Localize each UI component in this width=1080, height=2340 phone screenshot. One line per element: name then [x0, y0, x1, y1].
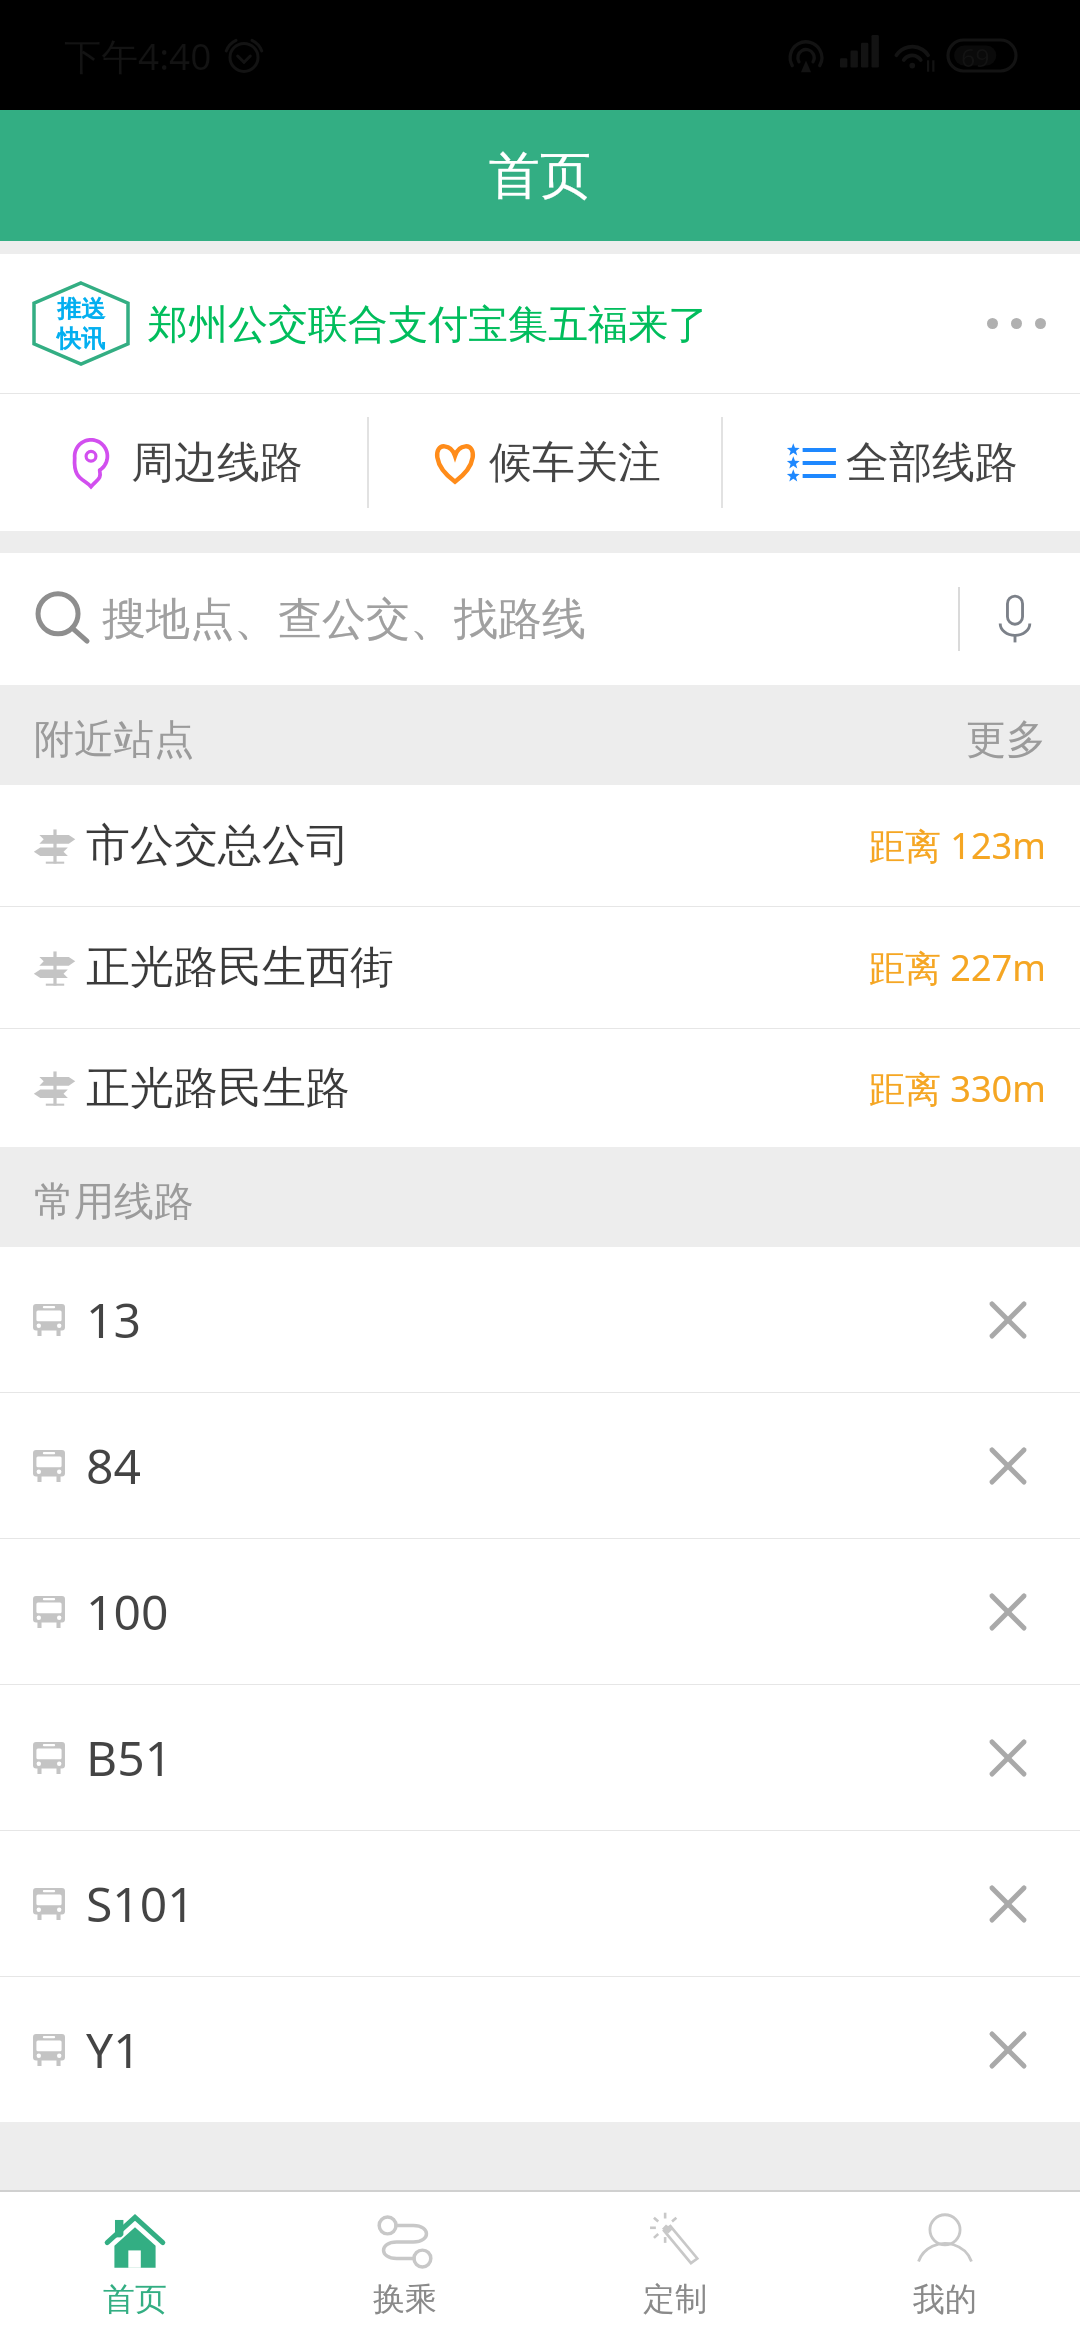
staticText: 下午4:40	[64, 30, 212, 81]
button[interactable]: 更多	[966, 714, 1046, 764]
staticText: 换乘	[373, 2279, 437, 2319]
staticText: 常用线路	[34, 1176, 194, 1226]
button[interactable]: 推送	[0, 254, 1080, 393]
button[interactable]: 100	[0, 1539, 1080, 1684]
button[interactable]: Y1	[0, 1977, 1080, 2122]
staticText: 推送	[57, 294, 105, 324]
button[interactable]: 定制	[540, 2192, 810, 2340]
button[interactable]: 13	[0, 1247, 1080, 1392]
staticText: Y1	[86, 2017, 141, 2082]
staticText: 首页	[489, 144, 591, 208]
button[interactable]: 周边线路	[0, 394, 367, 531]
button[interactable]: Remove B51	[968, 1718, 1048, 1798]
staticText: 距离 330m	[869, 1064, 1046, 1113]
button[interactable]: 84	[0, 1393, 1080, 1538]
button[interactable]: Remove S101	[968, 1864, 1048, 1944]
staticText: 正光路民生路	[86, 1061, 350, 1116]
button[interactable]: S101	[0, 1831, 1080, 1976]
staticText: 全部线路	[846, 436, 1018, 490]
staticText: 距离 227m	[869, 943, 1046, 992]
button[interactable]: 搜地点、查公交、找路线	[0, 553, 1080, 685]
button[interactable]: 候车关注	[369, 394, 721, 531]
button[interactable]: 市公交总公司	[0, 785, 1080, 906]
staticText: 69	[961, 40, 990, 71]
staticText: 附近站点	[34, 714, 194, 764]
button[interactable]: 全部线路	[723, 394, 1080, 531]
button[interactable]: Remove 84	[968, 1426, 1048, 1506]
button[interactable]: Remove 13	[968, 1280, 1048, 1360]
button[interactable]: Voice search	[975, 553, 1055, 685]
staticText: 84	[86, 1433, 141, 1498]
button[interactable]: 我的	[810, 2192, 1080, 2340]
staticText: 首页	[103, 2279, 167, 2319]
staticText: 我的	[913, 2279, 977, 2319]
staticText: S101	[86, 1871, 195, 1936]
button[interactable]: 换乘	[270, 2192, 540, 2340]
button[interactable]: Remove 100	[968, 1572, 1048, 1652]
staticText: 距离 123m	[869, 821, 1046, 870]
staticText: 候车关注	[489, 436, 661, 490]
button[interactable]: 首页	[0, 2192, 270, 2340]
staticText: 定制	[643, 2279, 707, 2319]
staticText: 郑州公交联合支付宝集五福来了	[148, 299, 708, 349]
staticText: 13	[86, 1287, 141, 1352]
button[interactable]: B51	[0, 1685, 1080, 1830]
staticText: 搜地点、查公交、找路线	[102, 592, 586, 647]
staticText: 快讯	[57, 324, 105, 354]
staticText: 更多	[966, 714, 1046, 764]
staticText: 正光路民生西街	[86, 940, 394, 995]
button[interactable]: 正光路民生路	[0, 1029, 1080, 1147]
button[interactable]: Remove Y1	[968, 2010, 1048, 2090]
staticText: B51	[86, 1725, 173, 1790]
button[interactable]: 正光路民生西街	[0, 907, 1080, 1028]
staticText: 市公交总公司	[86, 818, 350, 873]
staticText: 100	[86, 1579, 169, 1644]
staticText: 周边线路	[131, 436, 303, 490]
